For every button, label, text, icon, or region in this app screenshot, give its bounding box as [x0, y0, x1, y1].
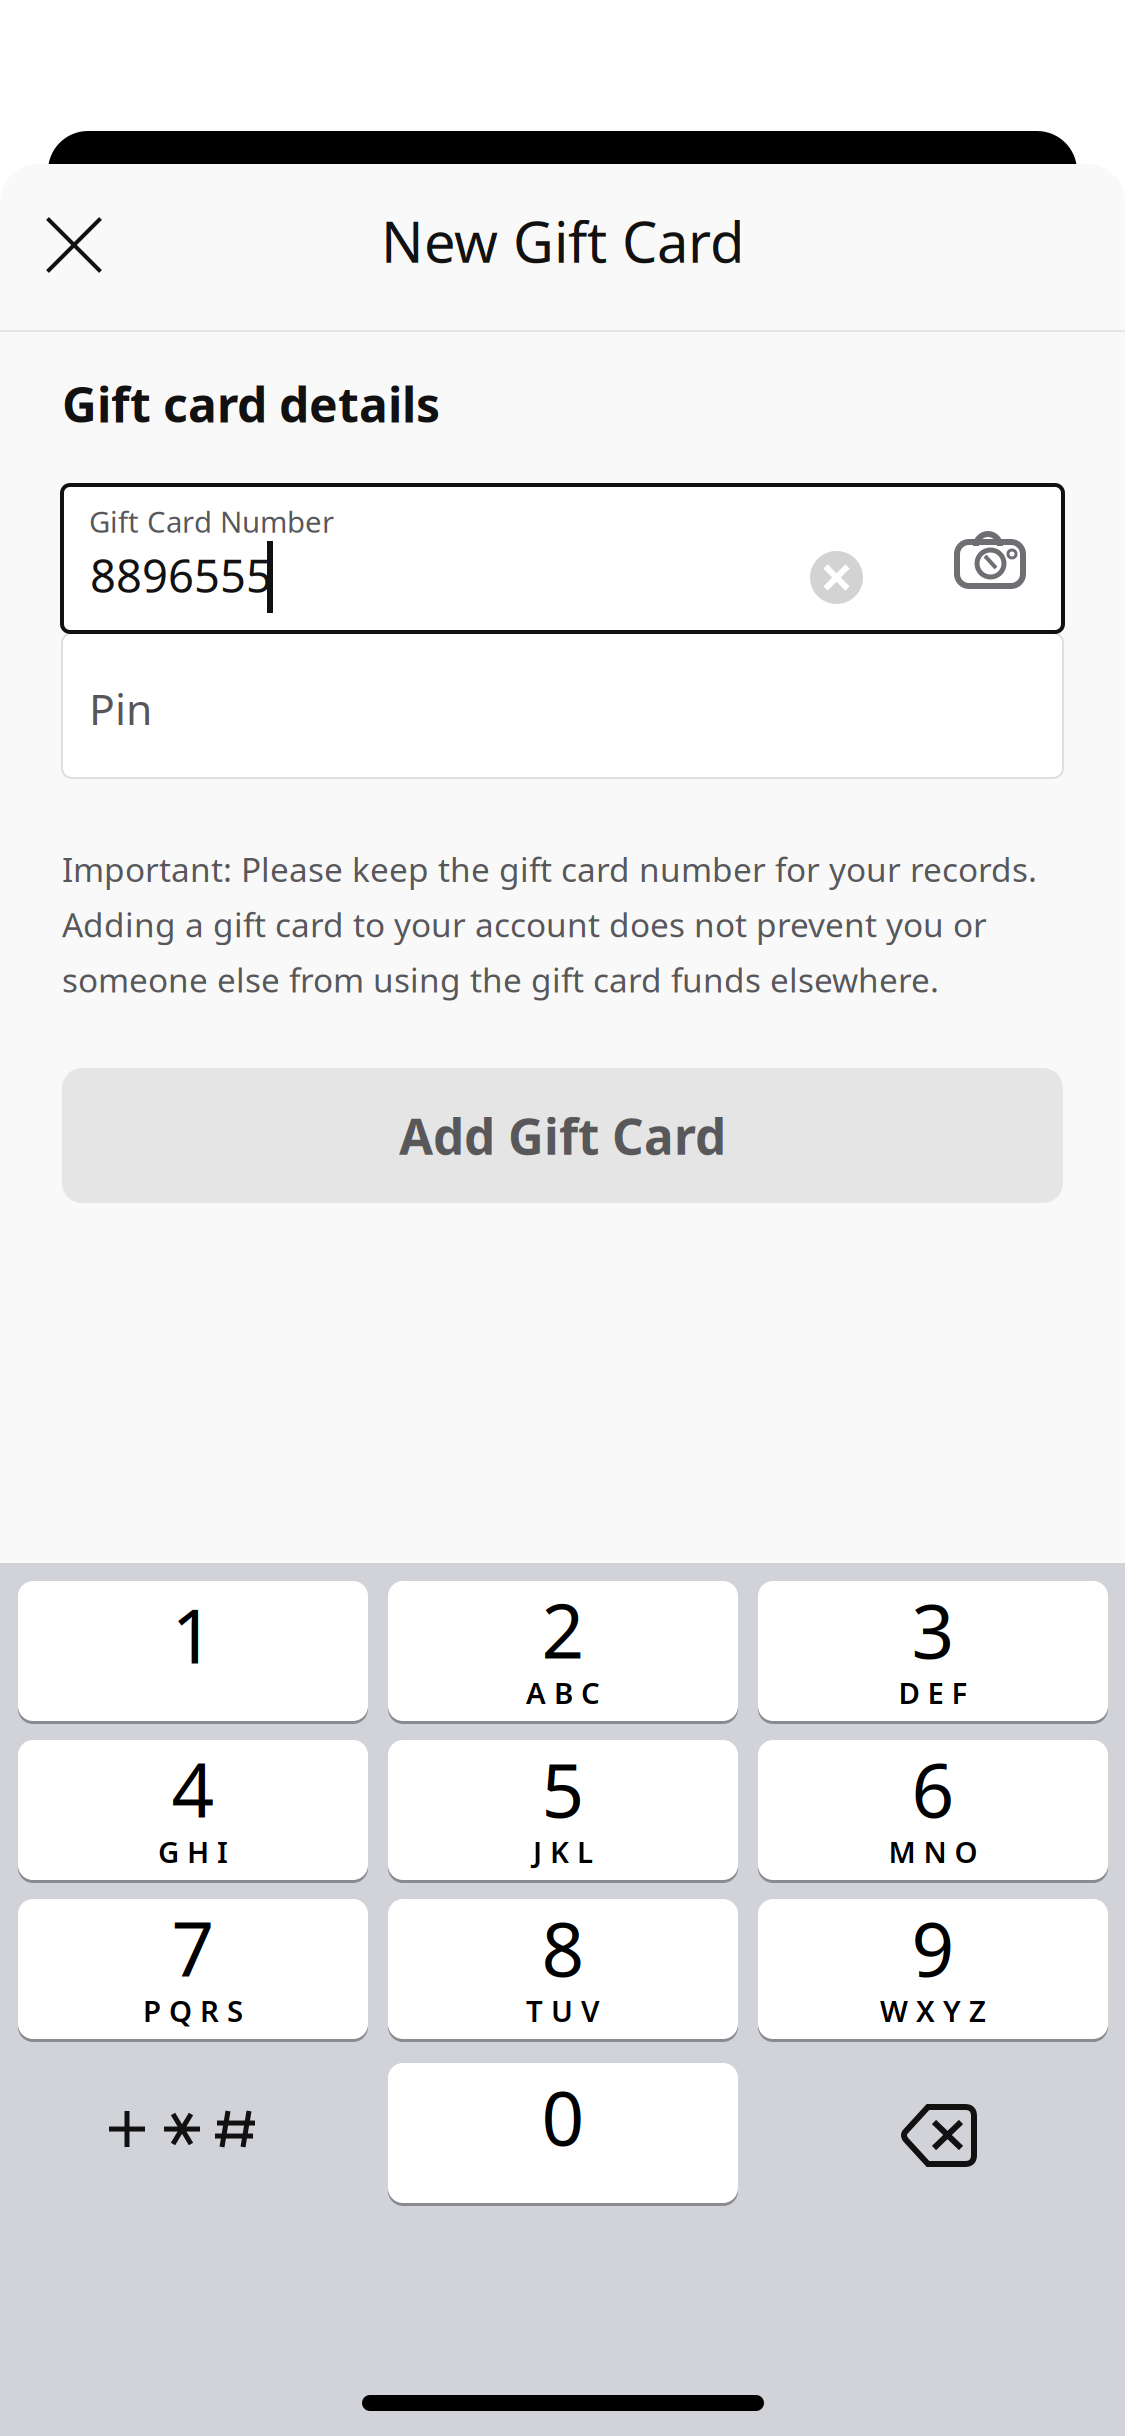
staticText: 9: [911, 1898, 954, 1997]
staticText: Gift card details: [62, 372, 440, 436]
button[interactable]: Close: [23, 194, 125, 296]
button[interactable]: 8: [388, 1899, 738, 2039]
staticText: Add Gift Card: [399, 1103, 726, 1168]
staticText: 3: [911, 1580, 954, 1679]
staticText: 1: [171, 1585, 214, 1684]
staticText: 5: [541, 1739, 584, 1838]
button[interactable]: 7: [18, 1899, 368, 2039]
button[interactable]: 1: [18, 1581, 368, 1721]
staticText: A B C: [526, 1673, 600, 1712]
button[interactable]: 0: [388, 2063, 738, 2203]
staticText: 8896555: [90, 545, 272, 605]
staticText: 2: [541, 1580, 584, 1679]
staticText: Gift Card Number: [89, 502, 334, 541]
button[interactable]: plus, star, pound: [18, 2063, 368, 2203]
button[interactable]: Delete: [758, 2063, 1108, 2203]
staticText: New Gift Card: [381, 204, 744, 278]
button[interactable]: Clear text: [810, 551, 863, 604]
button[interactable]: 2: [388, 1581, 738, 1721]
staticText: 7: [171, 1898, 214, 1997]
staticText: 0: [541, 2067, 584, 2166]
button[interactable]: 9: [758, 1899, 1108, 2039]
staticText: Important: Please keep the gift card num…: [62, 847, 1037, 1002]
button[interactable]: 4: [18, 1740, 368, 1880]
staticText: 4: [171, 1739, 214, 1838]
staticText: W X Y Z: [880, 1991, 986, 2030]
staticText: P Q R S: [143, 1991, 243, 2030]
staticText: Pin: [89, 680, 152, 737]
staticText: 8: [541, 1898, 584, 1997]
staticText: M N O: [888, 1832, 977, 1871]
staticText: 6: [911, 1739, 954, 1838]
button[interactable]: 6: [758, 1740, 1108, 1880]
button[interactable]: Add Gift Card: [62, 1068, 1063, 1203]
staticText: G H I: [158, 1832, 228, 1871]
staticText: D E F: [898, 1673, 967, 1712]
button[interactable]: Scan gift card: [954, 533, 1058, 619]
staticText: T U V: [526, 1991, 600, 2030]
button[interactable]: 3: [758, 1581, 1108, 1721]
staticText: J K L: [533, 1832, 593, 1871]
button[interactable]: 5: [388, 1740, 738, 1880]
